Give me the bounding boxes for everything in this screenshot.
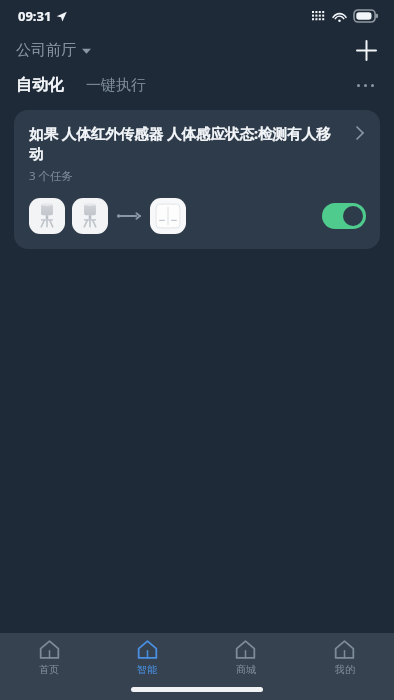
staticText: 首页 <box>39 663 59 676</box>
staticText: 09:31 <box>18 7 52 25</box>
button[interactable]: 公司前厅 <box>12 37 95 64</box>
button[interactable]: 我的 <box>295 633 394 676</box>
staticText: 如果 人体红外传感器 人体感应状态:检测有人移动 <box>29 123 344 163</box>
staticText: 商城 <box>236 663 256 676</box>
button[interactable]: 商城 <box>196 633 295 676</box>
button[interactable]: More options <box>348 68 382 102</box>
staticText: 3 个任务 <box>29 168 74 184</box>
button[interactable]: 首页 <box>0 633 98 676</box>
staticText: 我的 <box>335 663 355 676</box>
staticText: 一键执行 <box>86 76 146 95</box>
button[interactable]: Add <box>348 32 384 68</box>
staticText: 智能 <box>137 663 157 676</box>
staticText: 自动化 <box>16 75 64 95</box>
staticText: 公司前厅 <box>16 41 76 60</box>
button[interactable]: 一键执行 <box>84 72 148 99</box>
button[interactable]: 自动化 <box>14 71 66 99</box>
button[interactable]: 智能 <box>98 633 196 676</box>
button[interactable]: Enable automation <box>322 203 366 229</box>
button[interactable]: 如果 人体红外传感器 人体感应状态:检测有人移动 <box>14 110 380 249</box>
